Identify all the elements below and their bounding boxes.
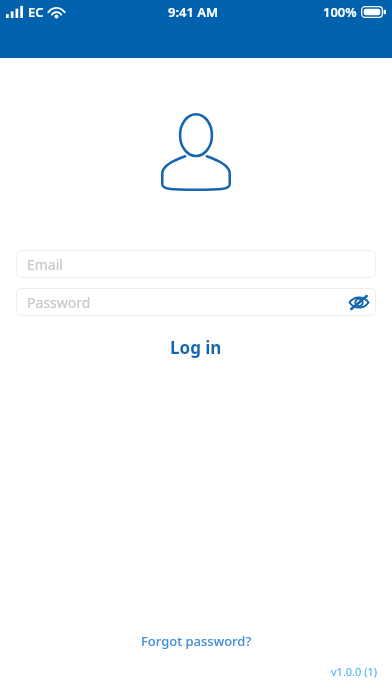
staticText: 9:41 AM xyxy=(168,3,219,21)
button[interactable]: Log in xyxy=(16,332,376,362)
staticText: v1.0.0 (1) xyxy=(331,664,378,679)
staticText: Password xyxy=(27,293,91,312)
button[interactable]: Password xyxy=(16,288,376,316)
button[interactable]: Forgot password? xyxy=(135,626,258,656)
staticText: Log in xyxy=(170,336,222,359)
staticText: 100% xyxy=(323,3,357,21)
staticText: EC xyxy=(28,3,44,21)
staticText: Email xyxy=(27,255,63,274)
staticText: Forgot password? xyxy=(141,632,252,650)
button[interactable]: Show password xyxy=(347,290,371,314)
button[interactable]: Email xyxy=(16,250,376,278)
